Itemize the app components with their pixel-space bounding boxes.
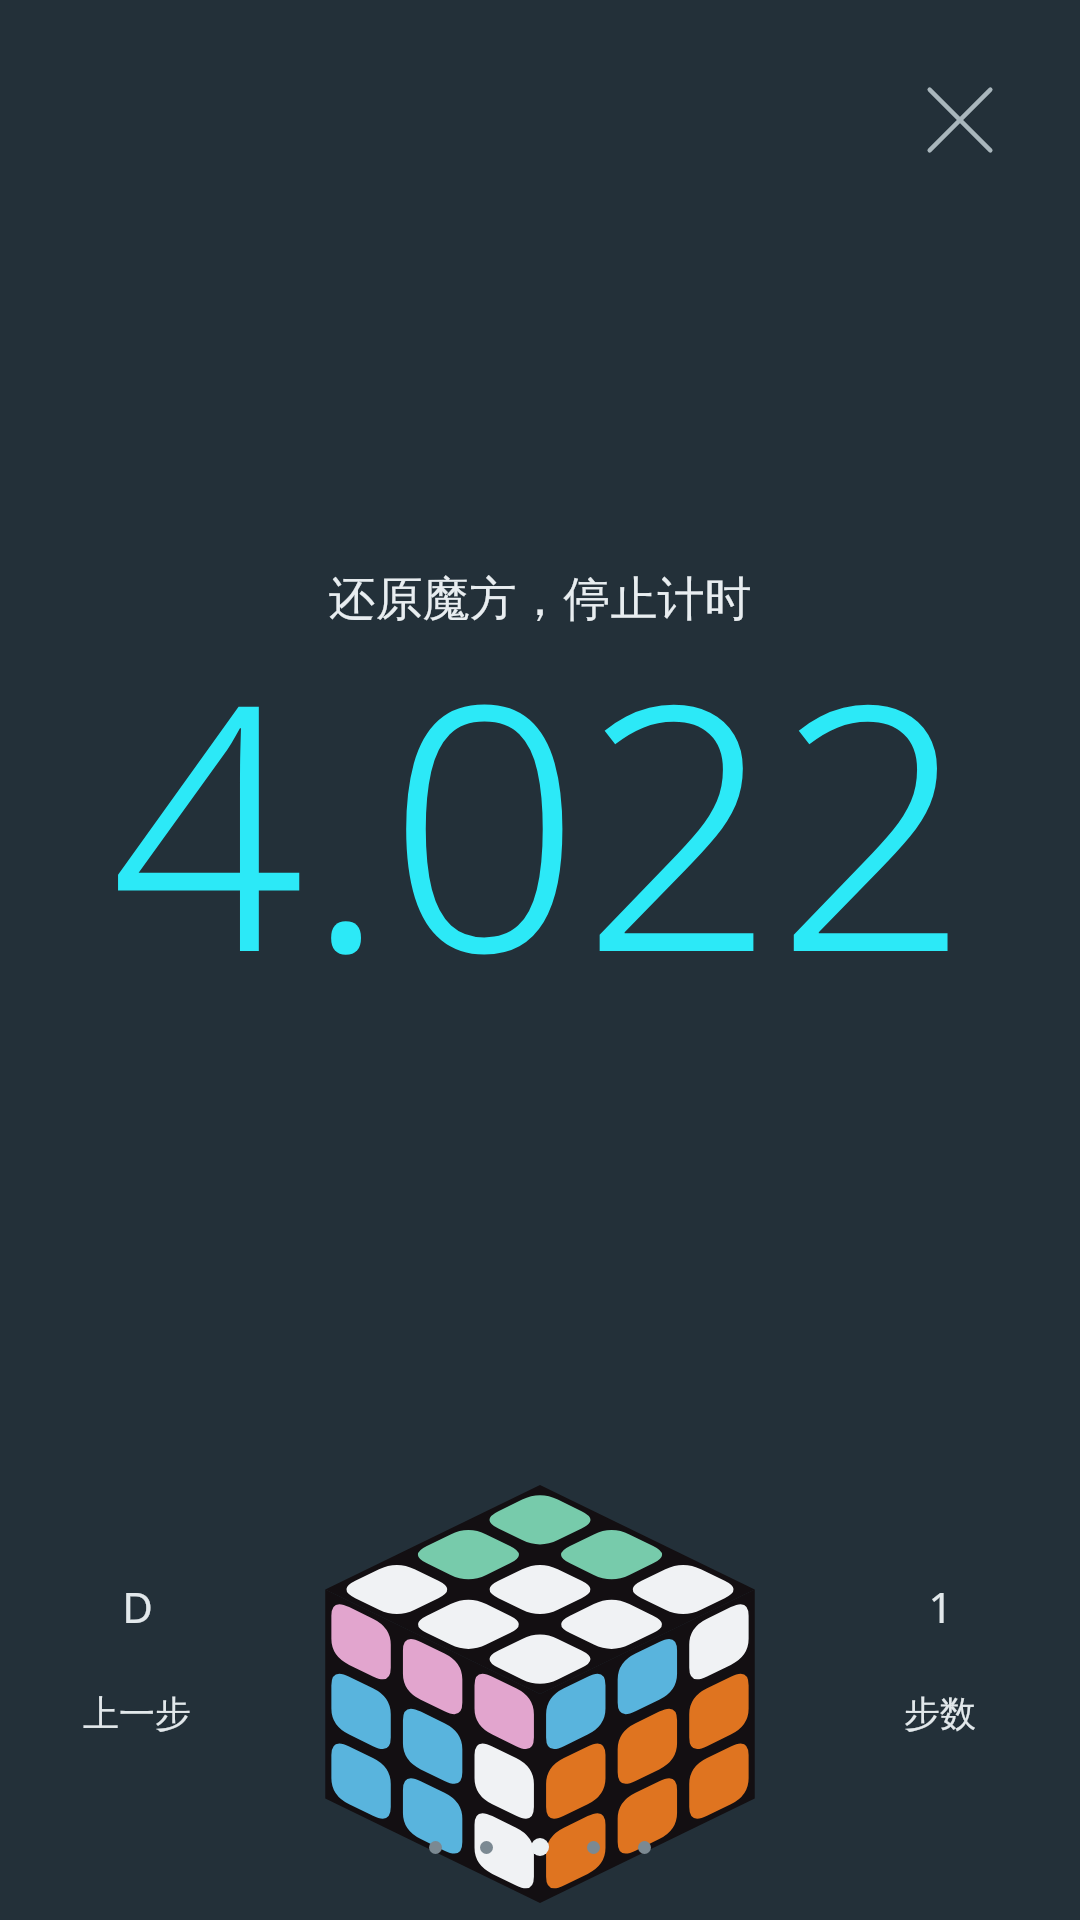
button[interactable]: Page 4: [587, 1841, 600, 1854]
staticText: 1: [928, 1578, 953, 1635]
button[interactable]: Page 1: [429, 1841, 442, 1854]
button[interactable]: Page 5: [638, 1841, 651, 1854]
button[interactable]: Page 3: [531, 1838, 549, 1856]
button[interactable]: 1: [840, 1578, 1040, 1736]
staticText: 步数: [904, 1691, 976, 1736]
staticText: D: [122, 1578, 153, 1635]
button[interactable]: Page 2: [480, 1841, 493, 1854]
staticText: 4.022: [0, 588, 1080, 1051]
button[interactable]: Close: [898, 58, 1022, 182]
staticText: 上一步: [83, 1691, 191, 1736]
button[interactable]: D: [37, 1578, 237, 1736]
staticText: 还原魔方，停止计时: [0, 570, 1080, 629]
